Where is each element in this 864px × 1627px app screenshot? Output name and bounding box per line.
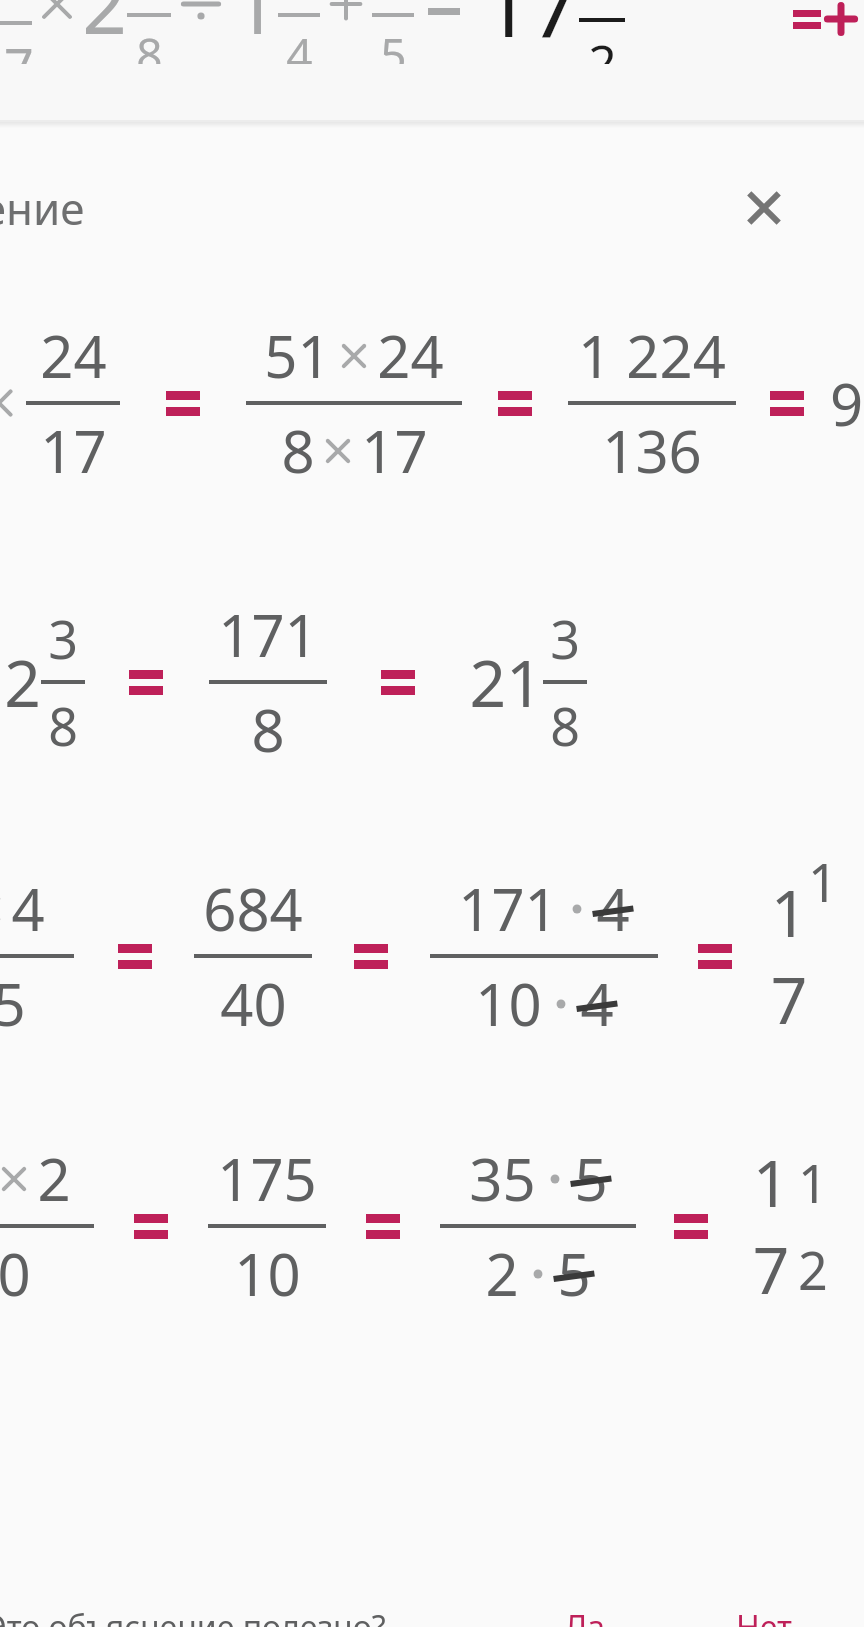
staticText: 175: [217, 1139, 317, 1218]
staticText: 8: [136, 23, 163, 64]
staticText: 2: [4, 639, 41, 726]
staticText: 17: [770, 869, 808, 1043]
staticText: 40: [220, 964, 287, 1043]
staticText: 2: [588, 28, 617, 64]
staticText: 1: [233, 0, 278, 57]
staticText: 24: [377, 316, 444, 395]
staticText: 10: [234, 1234, 301, 1313]
staticText: 9: [830, 364, 846, 443]
staticText: 5: [0, 964, 26, 1043]
staticText: Да: [564, 1605, 606, 1627]
button[interactable]: Нет: [730, 1605, 798, 1627]
staticText: 51: [264, 316, 331, 395]
staticText: 3: [550, 603, 580, 674]
staticText: 17: [0, 31, 34, 64]
staticText: 24: [40, 316, 107, 395]
staticText: 1 224: [578, 316, 726, 395]
staticText: 17: [361, 411, 428, 490]
staticText: 4: [11, 869, 45, 948]
staticText: 0: [0, 1234, 31, 1313]
staticText: 136: [602, 411, 702, 490]
staticText: 2: [485, 1234, 519, 1313]
staticText: 17: [40, 411, 107, 490]
staticText: 4: [580, 964, 614, 1043]
button[interactable]: 24: [0, 288, 846, 518]
staticText: 5: [557, 1234, 591, 1313]
button[interactable]: 2: [4, 572, 864, 792]
staticText: 35: [469, 1139, 536, 1218]
staticText: 4: [286, 23, 313, 64]
staticText: 684: [203, 869, 303, 948]
staticText: 2: [82, 0, 127, 57]
staticText: 10: [475, 964, 542, 1043]
button[interactable]: 2: [0, 1116, 798, 1336]
staticText: 8: [281, 411, 315, 490]
button[interactable]: 4: [0, 846, 808, 1066]
button[interactable]: Add to equation: [793, 2, 858, 36]
button[interactable]: Да: [558, 1605, 612, 1627]
staticText: 8: [251, 690, 285, 769]
staticText: 21: [469, 639, 543, 726]
button[interactable]: Close: [726, 170, 802, 246]
staticText: 8: [550, 690, 580, 761]
staticText: 2: [37, 1139, 71, 1218]
staticText: 17: [482, 0, 579, 61]
staticText: 171: [218, 595, 318, 674]
staticText: 4: [596, 869, 630, 948]
staticText: 17: [744, 1139, 798, 1313]
staticText: Нет: [736, 1605, 792, 1627]
staticText: Решение: [0, 178, 85, 238]
staticText: 171: [458, 869, 558, 948]
staticText: Это объяснение полезно?: [0, 1605, 386, 1627]
staticText: 5: [574, 1139, 608, 1218]
staticText: 5: [380, 23, 407, 64]
staticText: 8: [48, 690, 78, 761]
staticText: 3: [48, 603, 78, 674]
